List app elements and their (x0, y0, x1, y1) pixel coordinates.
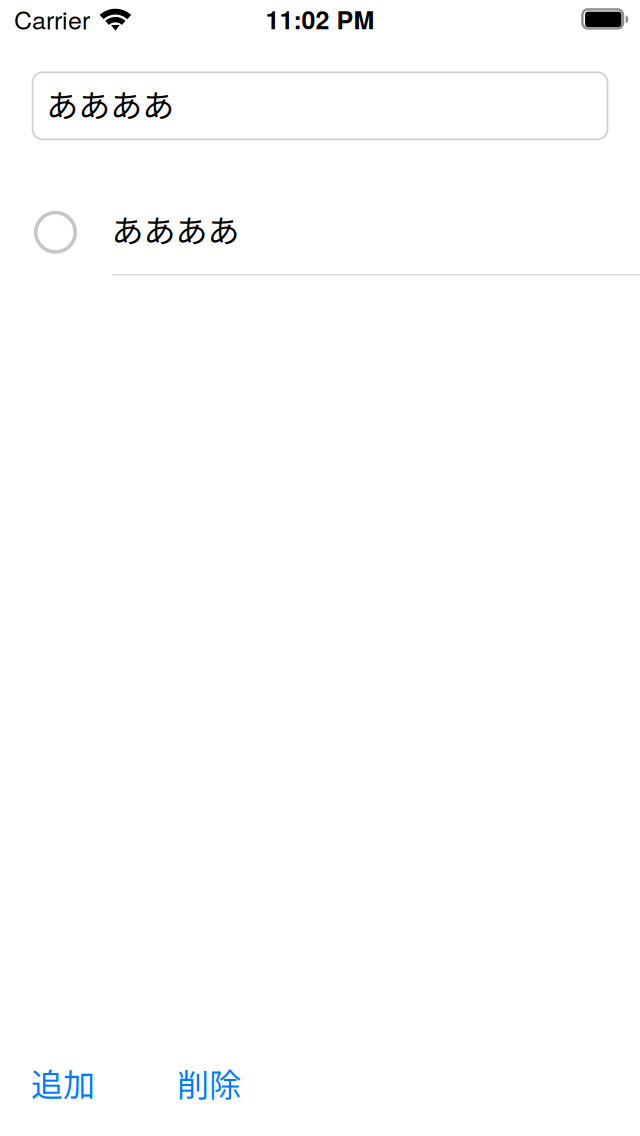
staticText: ああああ (46, 80, 174, 127)
staticText: 11:02 PM (265, 1, 374, 37)
staticText: 追加 (31, 1060, 95, 1106)
button[interactable]: 追加 (25, 1050, 101, 1116)
button[interactable]: ああああ (0, 71, 640, 140)
button[interactable]: ああああ (0, 187, 640, 275)
staticText: ああああ (111, 206, 239, 252)
button[interactable]: 削除 (171, 1050, 247, 1116)
staticText: 削除 (177, 1060, 241, 1106)
staticText: Carrier (14, 1, 90, 37)
